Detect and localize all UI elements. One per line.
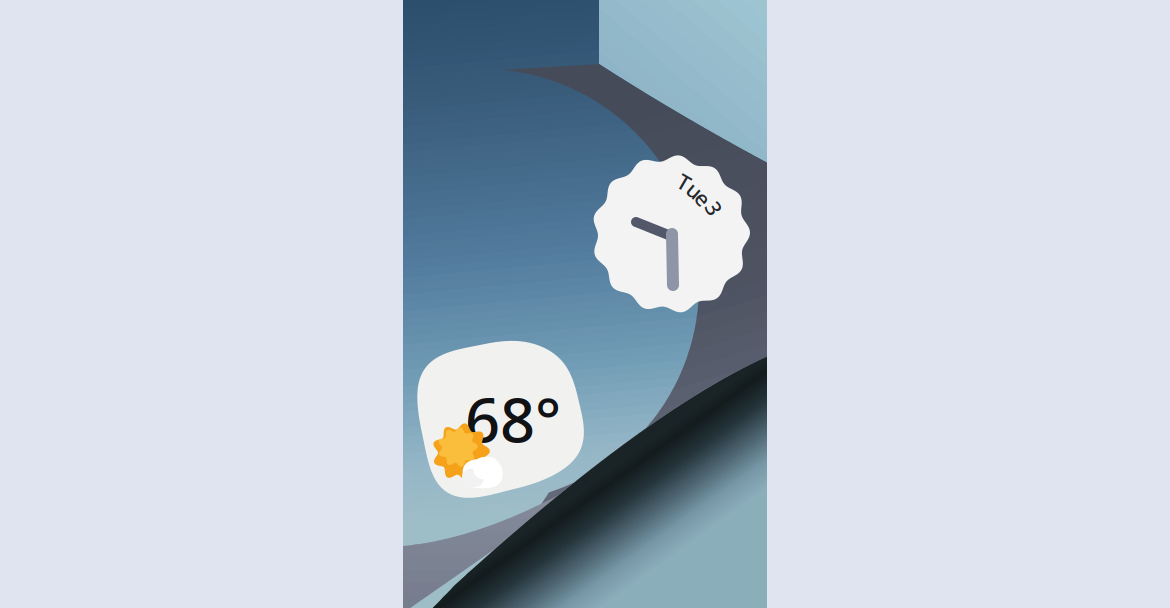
staticText: u (688, 176, 701, 204)
staticText: T (678, 168, 690, 196)
staticText: e (697, 184, 709, 212)
staticText: 68° (465, 378, 561, 459)
staticText: 3 (708, 194, 720, 222)
